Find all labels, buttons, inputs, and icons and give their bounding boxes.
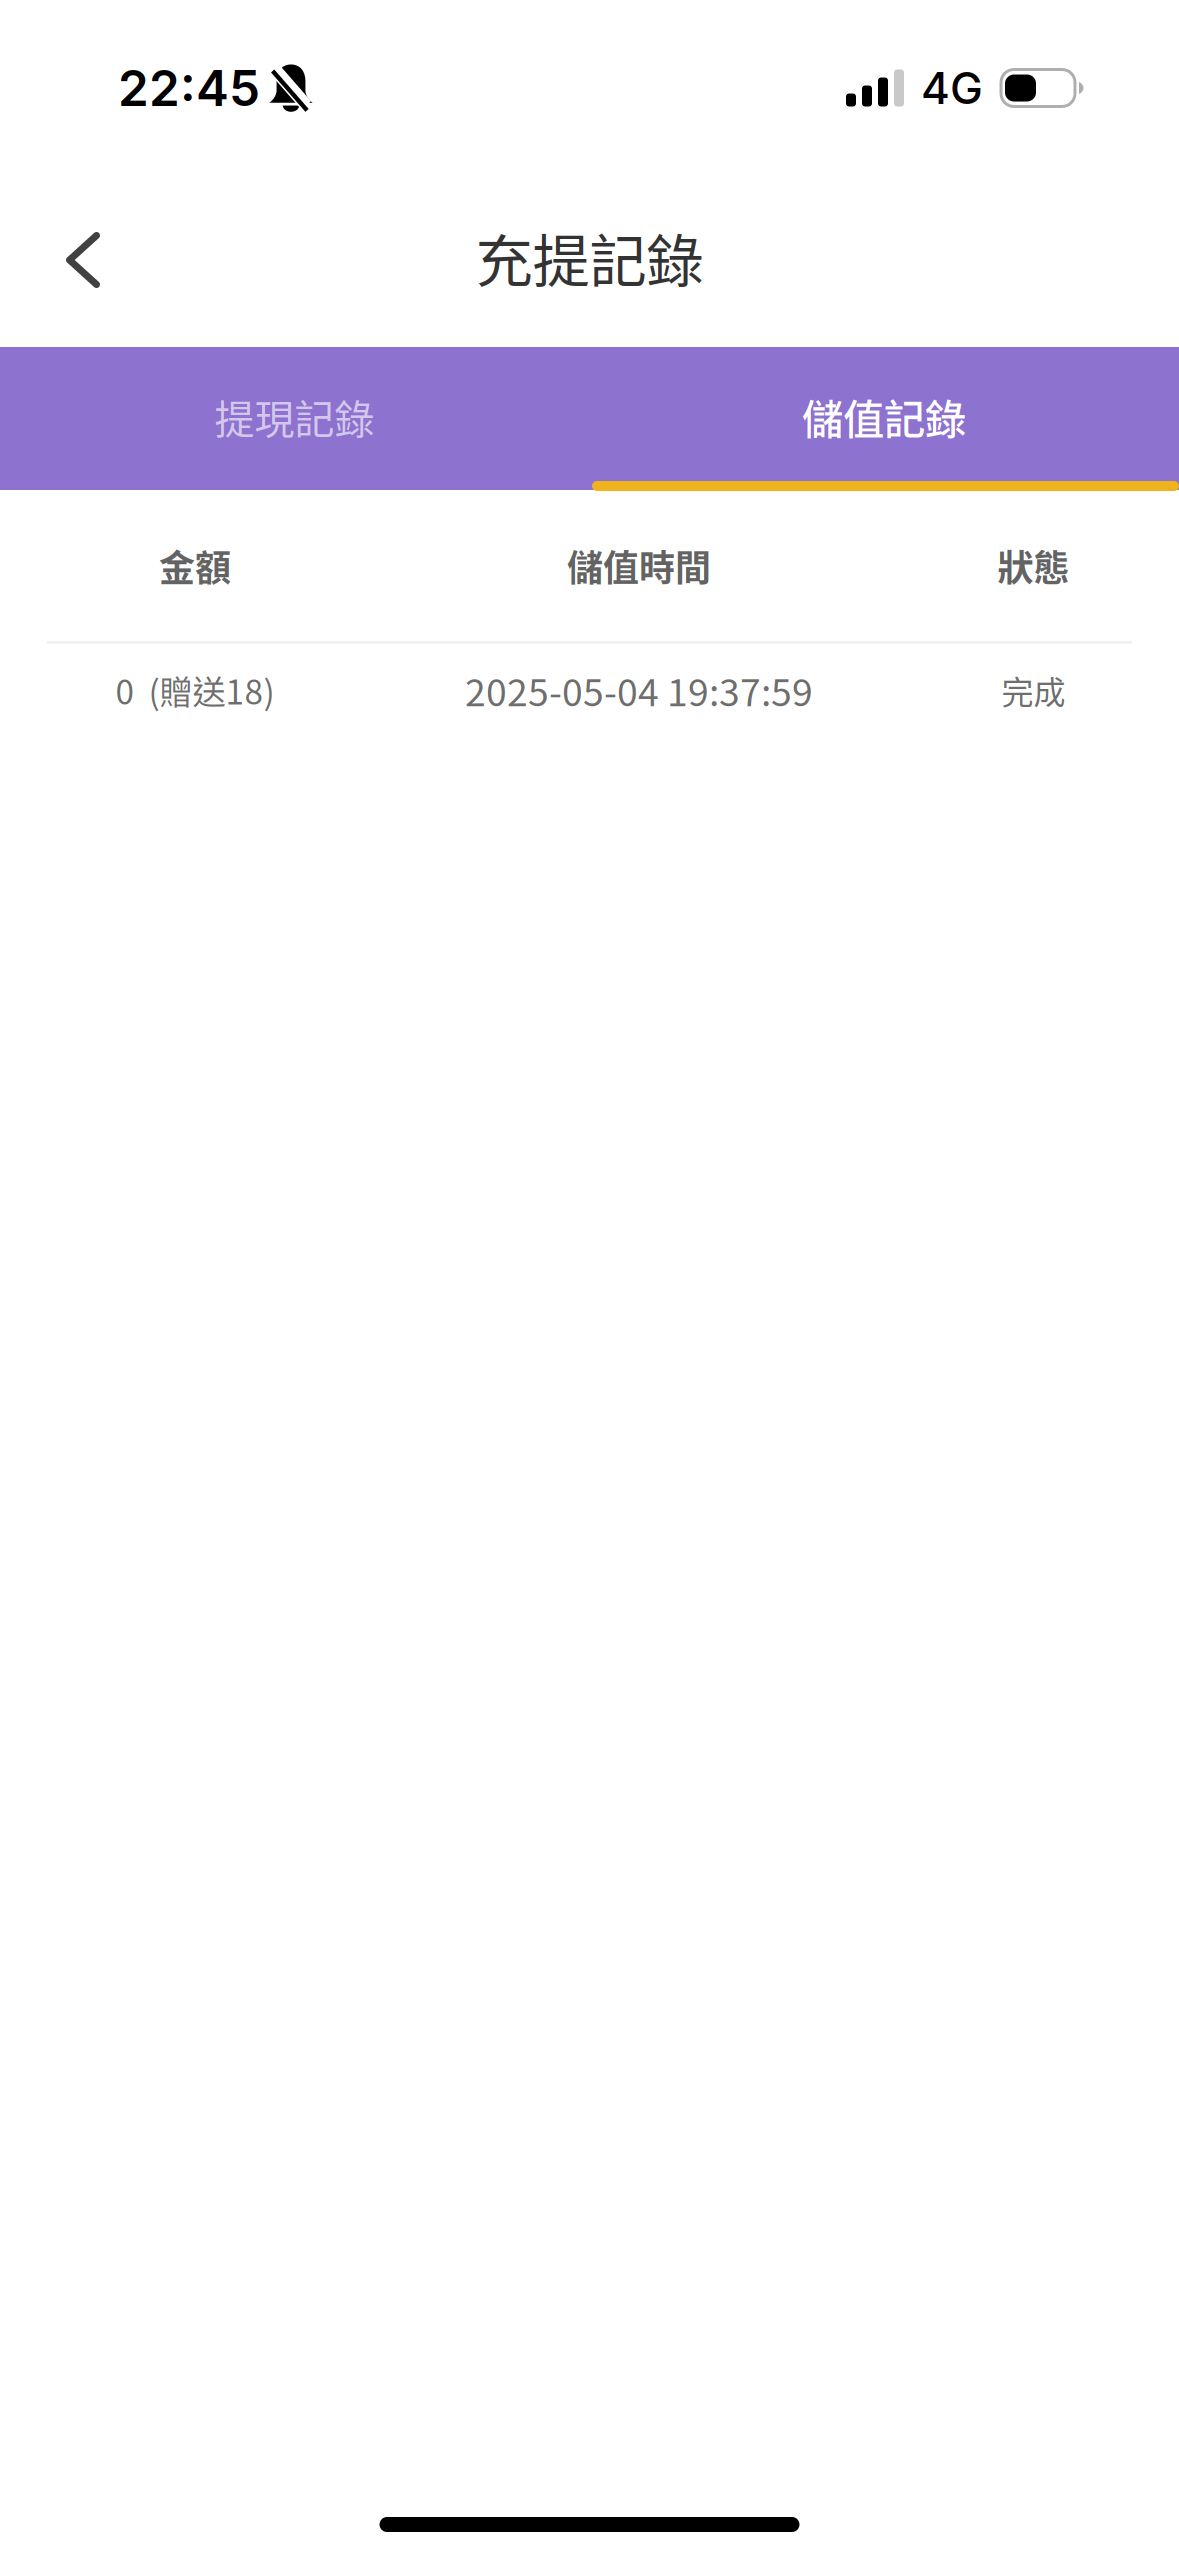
staticText: 充提記錄 bbox=[475, 215, 703, 298]
button[interactable]: Back bbox=[27, 197, 139, 309]
staticText: 4G bbox=[921, 61, 983, 115]
staticText: 完成 bbox=[1001, 667, 1065, 713]
staticText: 0 (贈送18) bbox=[115, 666, 274, 714]
staticText: 狀態 bbox=[997, 539, 1069, 591]
staticText: 金額 bbox=[159, 539, 231, 591]
button[interactable]: 提現記錄 bbox=[0, 347, 589, 490]
button[interactable]: 儲值記錄 bbox=[589, 347, 1179, 490]
staticText: 儲值時間 bbox=[567, 539, 711, 591]
staticText: 22:45 bbox=[118, 58, 260, 118]
staticText: 提現記錄 bbox=[214, 387, 374, 445]
staticText: 儲值記錄 bbox=[802, 387, 966, 446]
staticText: 2025-05-04 19:37:59 bbox=[465, 663, 813, 717]
